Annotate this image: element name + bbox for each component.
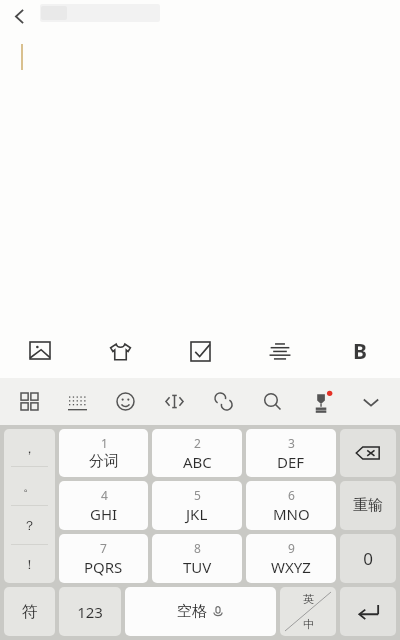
button[interactable]: 123: [59, 587, 121, 636]
staticText: DEF: [277, 452, 305, 472]
staticText: 4: [101, 487, 108, 503]
button[interactable]: Switch English Chinese: [280, 587, 336, 636]
button[interactable]: 2: [152, 429, 242, 477]
button[interactable]: 7: [59, 534, 148, 583]
staticText: ，: [23, 440, 36, 456]
button[interactable]: 空格: [125, 587, 276, 636]
staticText: 空格: [177, 602, 207, 621]
button[interactable]: Insert image: [0, 324, 80, 378]
button[interactable]: Backspace: [340, 429, 396, 477]
button[interactable]: ？: [4, 506, 55, 544]
button[interactable]: Back: [6, 3, 33, 30]
button[interactable]: ！: [4, 545, 55, 583]
staticText: B: [353, 337, 367, 366]
staticText: 5: [194, 487, 201, 503]
staticText: 中: [303, 617, 314, 631]
button[interactable]: Bold: [320, 324, 400, 378]
button[interactable]: 。: [4, 467, 55, 505]
staticText: 3: [288, 435, 295, 451]
button[interactable]: Collect: [297, 378, 346, 425]
staticText: PQRS: [84, 557, 123, 577]
staticText: ABC: [183, 452, 212, 472]
staticText: GHI: [90, 504, 118, 524]
button[interactable]: Move cursor: [150, 378, 199, 425]
button[interactable]: 5: [152, 481, 242, 530]
button[interactable]: Align text: [240, 324, 320, 378]
staticText: WXYZ: [271, 557, 311, 577]
staticText: 符: [22, 602, 38, 622]
staticText: 2: [194, 435, 201, 451]
staticText: ？: [23, 517, 36, 533]
staticText: 7: [100, 540, 107, 556]
button[interactable]: 符: [4, 587, 55, 636]
staticText: TUV: [183, 557, 212, 577]
button[interactable]: Checklist: [160, 324, 240, 378]
button[interactable]: 3: [246, 429, 336, 477]
staticText: 分词: [89, 452, 119, 471]
button[interactable]: Emoji: [101, 378, 150, 425]
staticText: JKL: [186, 504, 208, 524]
staticText: 9: [288, 540, 295, 556]
staticText: 英: [303, 592, 314, 606]
staticText: ！: [23, 556, 36, 572]
button[interactable]: 重输: [340, 481, 396, 530]
button[interactable]: Sticker: [80, 324, 160, 378]
button[interactable]: Clipboard: [199, 378, 248, 425]
button[interactable]: 0: [340, 534, 396, 583]
staticText: 0: [363, 547, 373, 570]
button[interactable]: 1: [59, 429, 148, 477]
button[interactable]: Punctuation: [4, 429, 55, 583]
staticText: 6: [288, 487, 295, 503]
button[interactable]: Search: [248, 378, 297, 425]
button[interactable]: Hide keyboard: [346, 378, 395, 425]
button[interactable]: 4: [59, 481, 148, 530]
staticText: 123: [77, 602, 103, 622]
staticText: 重输: [353, 496, 383, 515]
staticText: MNO: [273, 504, 310, 524]
button[interactable]: 9: [246, 534, 336, 583]
button[interactable]: ，: [4, 429, 55, 466]
staticText: 8: [194, 540, 201, 556]
button[interactable]: 6: [246, 481, 336, 530]
button[interactable]: 8: [152, 534, 242, 583]
button[interactable]: Enter: [340, 587, 396, 636]
button[interactable]: Keyboard layout: [53, 378, 101, 425]
staticText: 。: [23, 478, 36, 494]
button[interactable]: Apps: [5, 378, 53, 425]
staticText: 1: [101, 435, 108, 451]
